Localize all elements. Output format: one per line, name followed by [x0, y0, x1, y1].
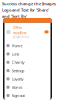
button[interactable]: Lists [6, 51, 34, 57]
staticText: Logo and Text for 'Share' [2, 7, 49, 13]
staticText: Lists [11, 51, 19, 57]
staticText: details here [12, 35, 29, 39]
staticText: Offer headline [12, 25, 26, 35]
button[interactable]: Loyalty [6, 76, 34, 81]
button[interactable]: Sign out [6, 93, 34, 98]
staticText: and 'Sort By' [2, 14, 27, 19]
staticText: Sign out [11, 93, 24, 98]
staticText: Home [11, 43, 22, 48]
button[interactable]: Settings [6, 68, 34, 73]
staticText: Settings [11, 68, 24, 73]
staticText: Loyalty [11, 76, 23, 81]
button[interactable]: Charity [6, 60, 34, 65]
staticText: Success change the Images [2, 1, 56, 6]
button[interactable]: Stores [6, 85, 34, 90]
staticText: Charity [11, 60, 24, 65]
button[interactable]: Home [6, 43, 34, 48]
staticText: Stores [11, 85, 22, 90]
